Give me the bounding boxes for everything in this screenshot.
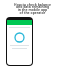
staticText: How to check balance and data remaining … (14, 2, 51, 15)
